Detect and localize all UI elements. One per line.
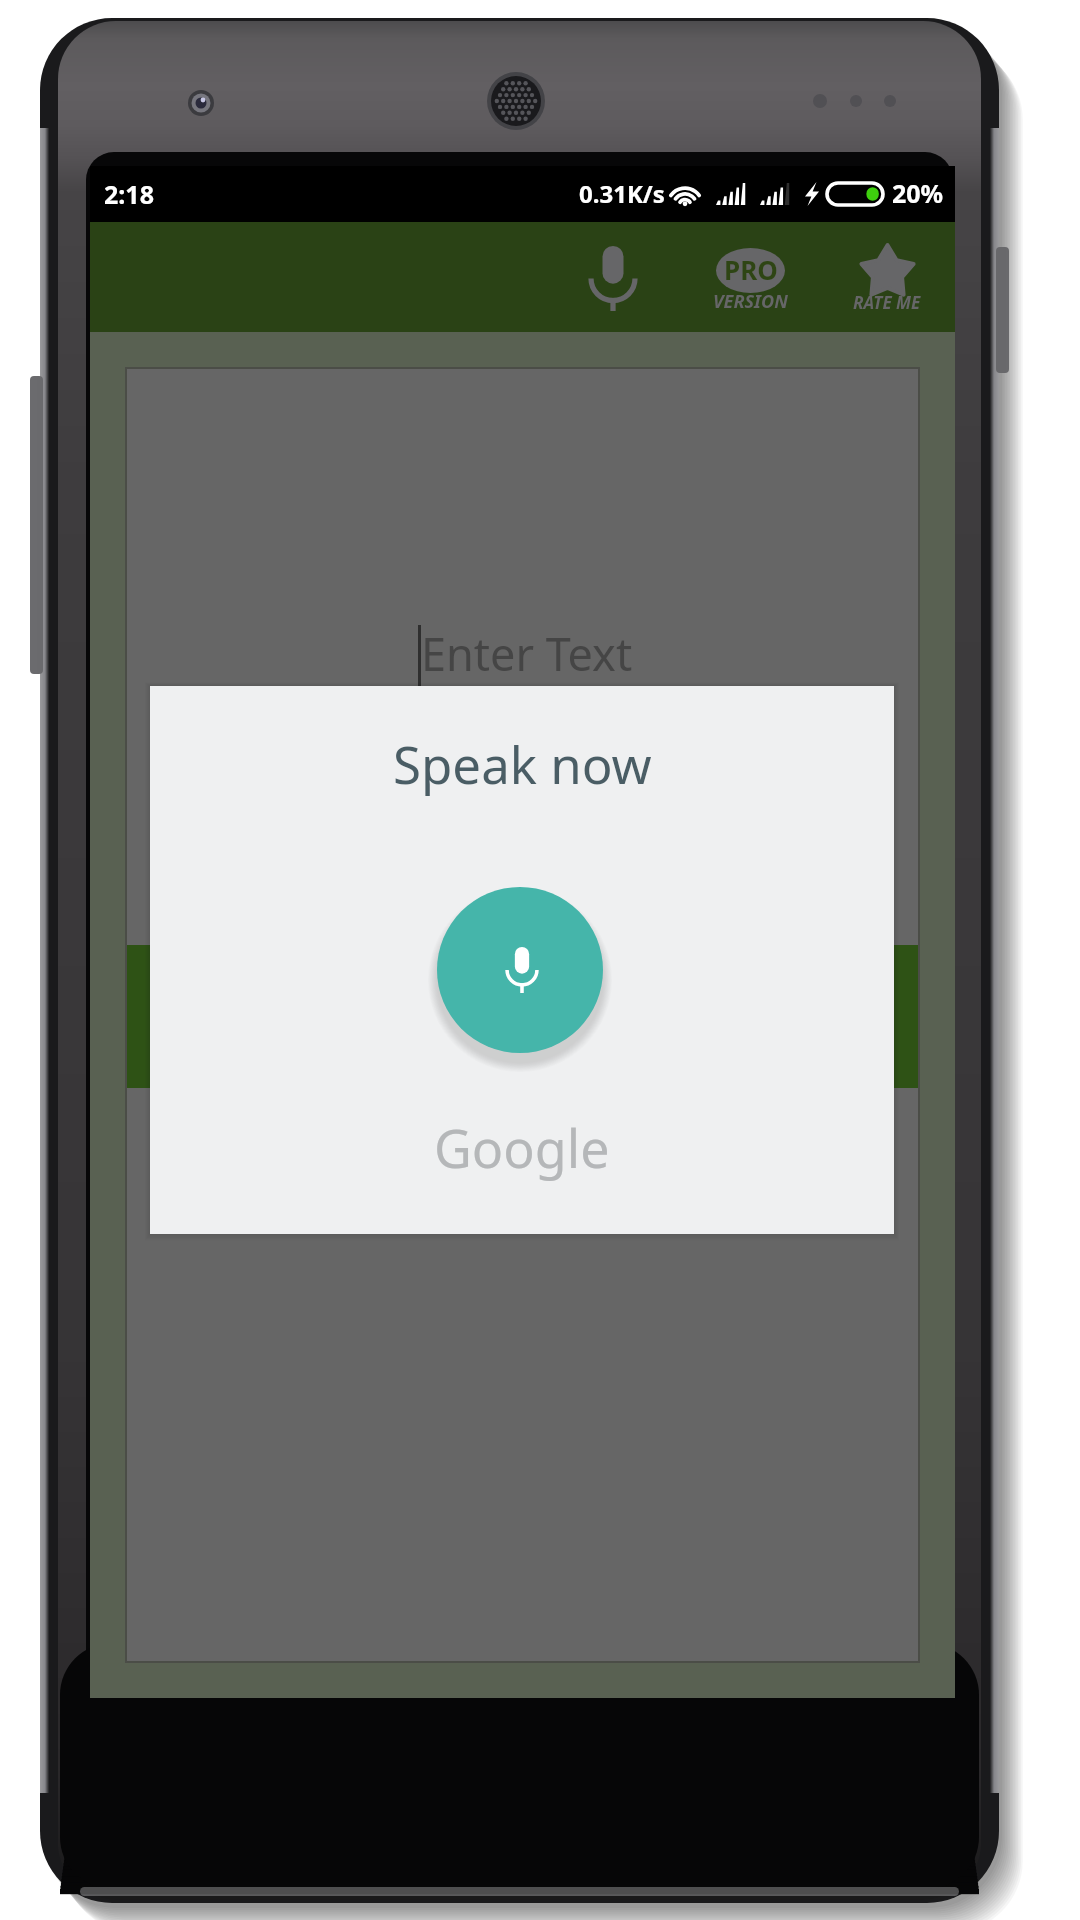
button[interactable]: Microphone bbox=[437, 887, 603, 1053]
button[interactable]: Convert bbox=[127, 945, 918, 1088]
staticText: 2:18 bbox=[104, 177, 154, 211]
staticText: 0.31K/s bbox=[579, 177, 665, 210]
staticText: Enter Text bbox=[421, 623, 633, 684]
button[interactable]: PRO bbox=[682, 228, 818, 338]
button[interactable]: Voice input bbox=[553, 222, 673, 332]
staticText: 20% bbox=[892, 176, 944, 210]
staticText: Speak now bbox=[393, 729, 652, 798]
button[interactable]: RATE ME bbox=[819, 228, 955, 338]
staticText: VERSION bbox=[713, 289, 788, 314]
staticText: RATE ME bbox=[853, 291, 921, 314]
staticText: PRO bbox=[724, 252, 778, 287]
staticText: Google bbox=[434, 1112, 610, 1183]
